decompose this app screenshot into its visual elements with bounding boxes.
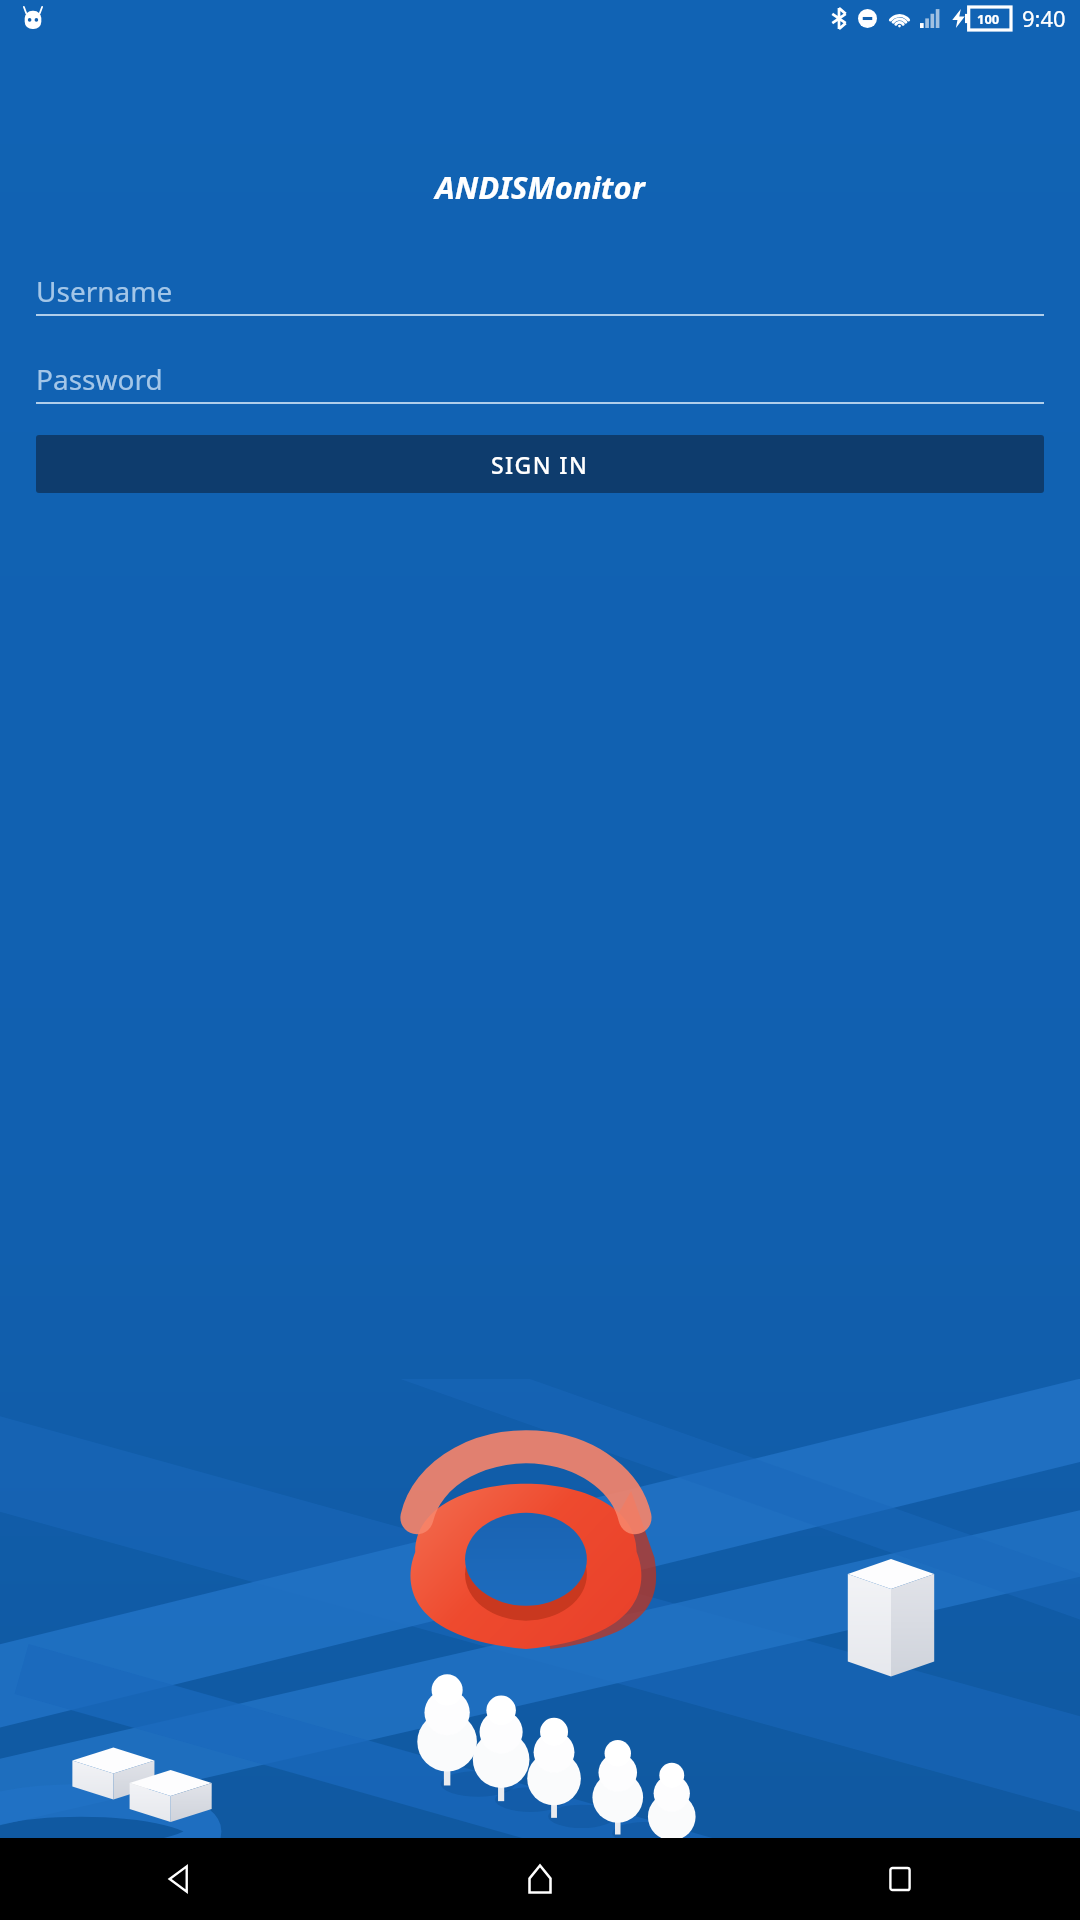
button[interactable]: Password: [36, 356, 1044, 404]
button[interactable]: Back: [0, 1838, 360, 1920]
staticText: 100: [977, 10, 1000, 28]
staticText: 9:40: [1022, 3, 1066, 33]
staticText: Username: [36, 272, 173, 310]
staticText: ANDISMonitor: [435, 166, 645, 208]
staticText: SIGN IN: [491, 449, 589, 480]
button[interactable]: SIGN IN: [36, 435, 1044, 493]
button[interactable]: Home: [360, 1838, 720, 1920]
button[interactable]: Recents: [720, 1838, 1080, 1920]
staticText: Password: [36, 360, 163, 398]
button[interactable]: Username: [36, 268, 1044, 316]
